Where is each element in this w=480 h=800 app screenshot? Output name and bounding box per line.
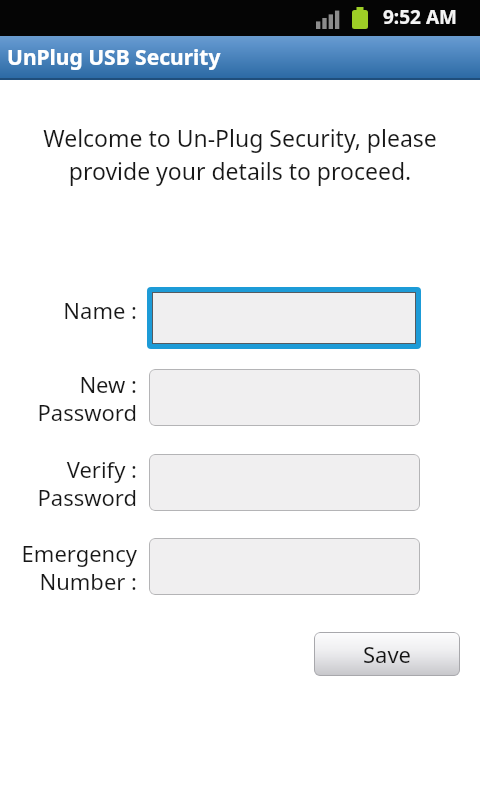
staticText: Welcome to Un-Plug Security, please prov… (20, 122, 460, 187)
staticText: Save (363, 639, 412, 669)
other: Signal strength (316, 10, 343, 29)
button[interactable] (149, 369, 420, 426)
staticText: 9:52 AM (383, 4, 457, 30)
other: Battery (352, 7, 368, 29)
button[interactable] (149, 454, 420, 511)
staticText: New : Password (0, 369, 137, 427)
staticText: Verify : Password (0, 454, 137, 512)
button[interactable]: Name input (147, 287, 421, 349)
button[interactable]: Save (314, 632, 460, 676)
button[interactable] (149, 538, 420, 595)
staticText: UnPlug USB Security (7, 43, 221, 72)
staticText: Emergency Number : (0, 538, 137, 596)
staticText: Name : (0, 295, 137, 325)
